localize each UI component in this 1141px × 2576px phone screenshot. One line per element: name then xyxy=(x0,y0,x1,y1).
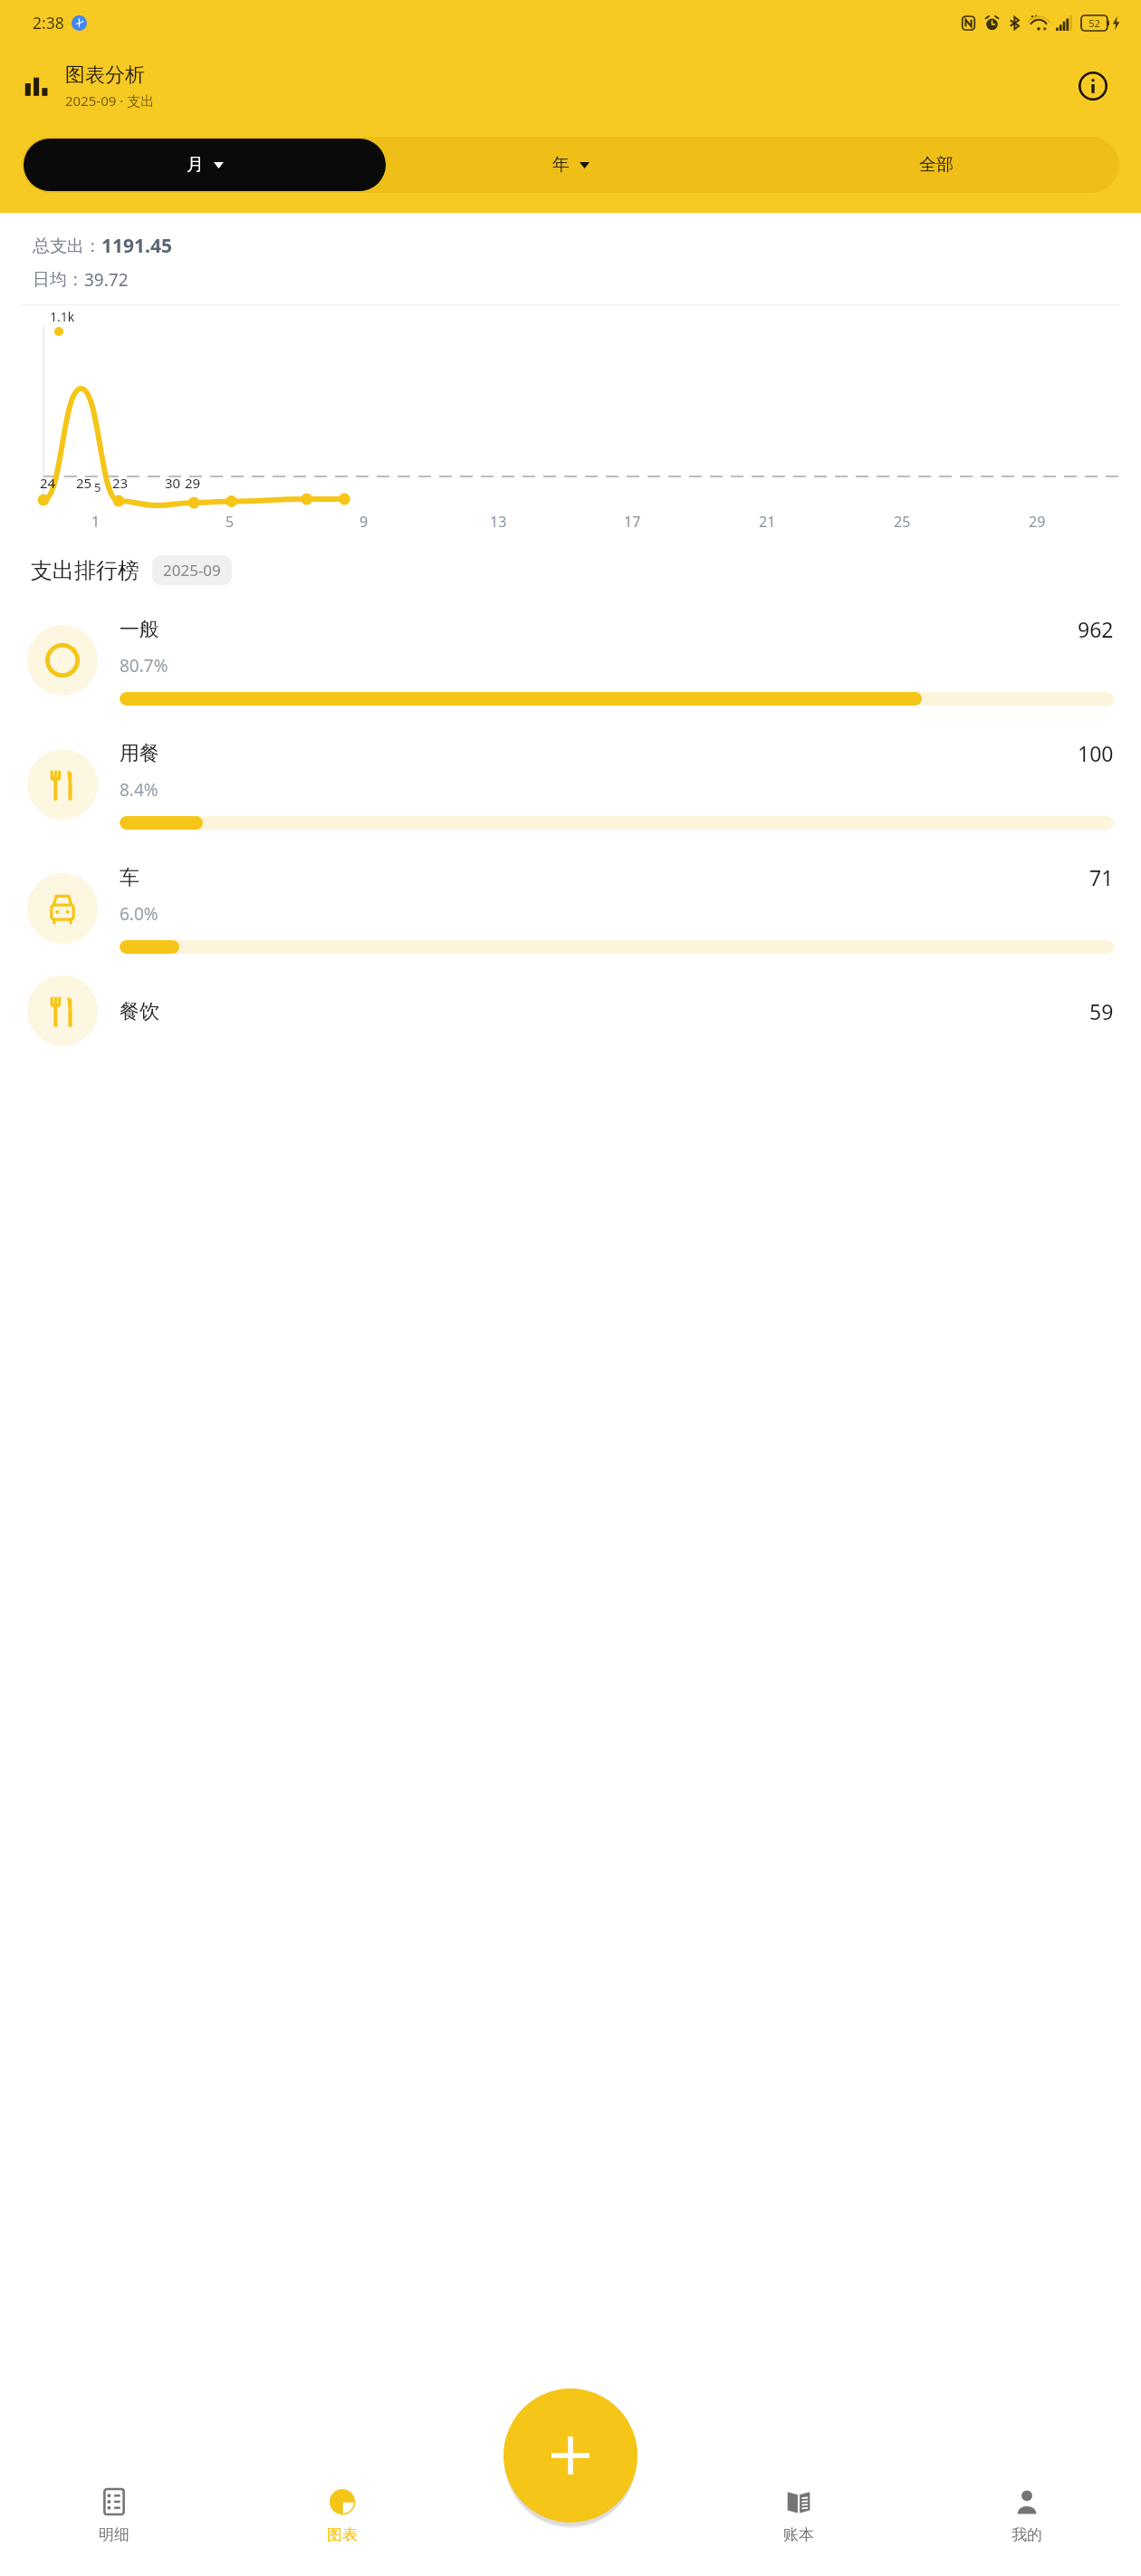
staticText: 17 xyxy=(624,512,641,532)
button[interactable]: 一般 xyxy=(0,598,1141,722)
staticText: 80.7% xyxy=(120,654,168,678)
staticText: 23 xyxy=(112,474,129,492)
staticText: 8.4% xyxy=(120,778,158,802)
staticText: 962 xyxy=(1078,615,1114,643)
staticText: 总支出： xyxy=(33,235,101,257)
staticText: 25 xyxy=(76,474,92,492)
button[interactable]: 账本 xyxy=(685,2456,913,2576)
staticText: 1 xyxy=(91,512,101,532)
staticText: 用餐 xyxy=(120,741,1078,766)
staticText: 2025-09 xyxy=(163,560,221,581)
button[interactable]: 全部 xyxy=(753,137,1119,193)
staticText: 25 xyxy=(894,512,911,532)
button[interactable]: 餐饮 xyxy=(0,970,1141,1052)
staticText: 5 xyxy=(94,479,101,495)
button[interactable]: 用餐 xyxy=(0,722,1141,846)
staticText: 我的 xyxy=(1012,2525,1042,2544)
staticText: 支出排行榜 xyxy=(31,557,139,584)
button[interactable]: Add xyxy=(503,2389,638,2523)
button[interactable]: 年 xyxy=(388,137,753,193)
staticText: 39.72 xyxy=(84,268,129,292)
staticText: 1.1k xyxy=(50,308,75,325)
button[interactable]: Info xyxy=(1072,65,1114,107)
staticText: 一般 xyxy=(120,617,1078,642)
staticText: 52 xyxy=(1088,16,1100,30)
staticText: 71 xyxy=(1089,863,1114,891)
staticText: 29 xyxy=(1029,512,1046,532)
staticText: 1191.45 xyxy=(101,233,172,259)
staticText: 21 xyxy=(759,512,776,532)
staticText: 月 xyxy=(187,154,204,176)
staticText: 2:38 xyxy=(33,12,64,34)
button[interactable]: 明细 xyxy=(0,2456,228,2576)
staticText: 餐饮 xyxy=(120,999,1089,1024)
staticText: 30 xyxy=(165,474,181,492)
staticText: 6.0% xyxy=(120,902,158,926)
staticText: 日均： xyxy=(33,269,84,291)
staticText: 车 xyxy=(120,865,1089,890)
staticText: 图表分析 xyxy=(65,62,145,88)
staticText: 29 xyxy=(185,474,201,492)
staticText: 明细 xyxy=(99,2525,129,2544)
staticText: 13 xyxy=(490,512,507,532)
staticText: 年 xyxy=(552,154,570,176)
staticText: 9 xyxy=(360,512,369,532)
staticText: 2025-09 · 支出 xyxy=(65,91,155,110)
staticText: 100 xyxy=(1078,739,1114,767)
staticText: 图表 xyxy=(327,2525,358,2544)
button[interactable]: 我的 xyxy=(913,2456,1141,2576)
staticText: 账本 xyxy=(783,2525,814,2544)
staticText: 5 xyxy=(225,512,235,532)
button[interactable]: 图表 xyxy=(228,2456,456,2576)
staticText: 24 xyxy=(40,474,56,492)
button[interactable]: 月 xyxy=(24,139,386,191)
staticText: 59 xyxy=(1089,997,1114,1025)
staticText: 全部 xyxy=(919,154,954,176)
button[interactable]: 车 xyxy=(0,846,1141,970)
